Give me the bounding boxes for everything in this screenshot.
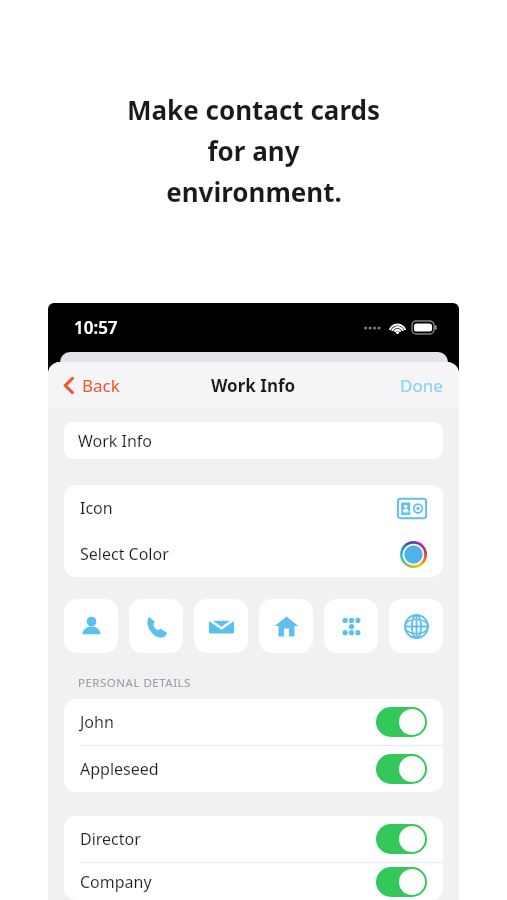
staticText: environment. xyxy=(166,174,342,209)
staticText: John xyxy=(80,711,114,733)
staticText: Make contact cards xyxy=(127,92,380,127)
staticText: Done xyxy=(400,374,443,397)
button[interactable]: More xyxy=(324,599,378,653)
button[interactable]: Phone xyxy=(129,599,183,653)
button[interactable]: Person xyxy=(64,599,118,653)
staticText: Back xyxy=(82,374,120,397)
button[interactable]: Company xyxy=(64,863,443,900)
staticText: Icon xyxy=(80,497,113,519)
staticText: PERSONAL DETAILS xyxy=(78,675,191,691)
button[interactable]: Icon xyxy=(64,485,443,531)
button[interactable]: Email xyxy=(194,599,248,653)
staticText: Work Info xyxy=(78,430,153,452)
staticText: Appleseed xyxy=(80,758,159,780)
staticText: Work Info xyxy=(211,374,296,397)
staticText: for any xyxy=(207,133,300,168)
button[interactable]: Work Info xyxy=(64,422,443,459)
staticText: Select Color xyxy=(80,543,169,565)
button[interactable]: Home xyxy=(259,599,313,653)
button[interactable]: John xyxy=(64,699,443,745)
staticText: 10:57 xyxy=(74,316,118,339)
button[interactable]: Select Color xyxy=(64,531,443,577)
staticText: Director xyxy=(80,828,141,850)
button[interactable]: Website xyxy=(389,599,443,653)
staticText: Company xyxy=(80,871,152,893)
button[interactable]: Director xyxy=(64,816,443,862)
button[interactable]: Appleseed xyxy=(64,746,443,792)
button[interactable]: Done xyxy=(394,370,449,401)
button[interactable]: Back xyxy=(58,370,126,401)
